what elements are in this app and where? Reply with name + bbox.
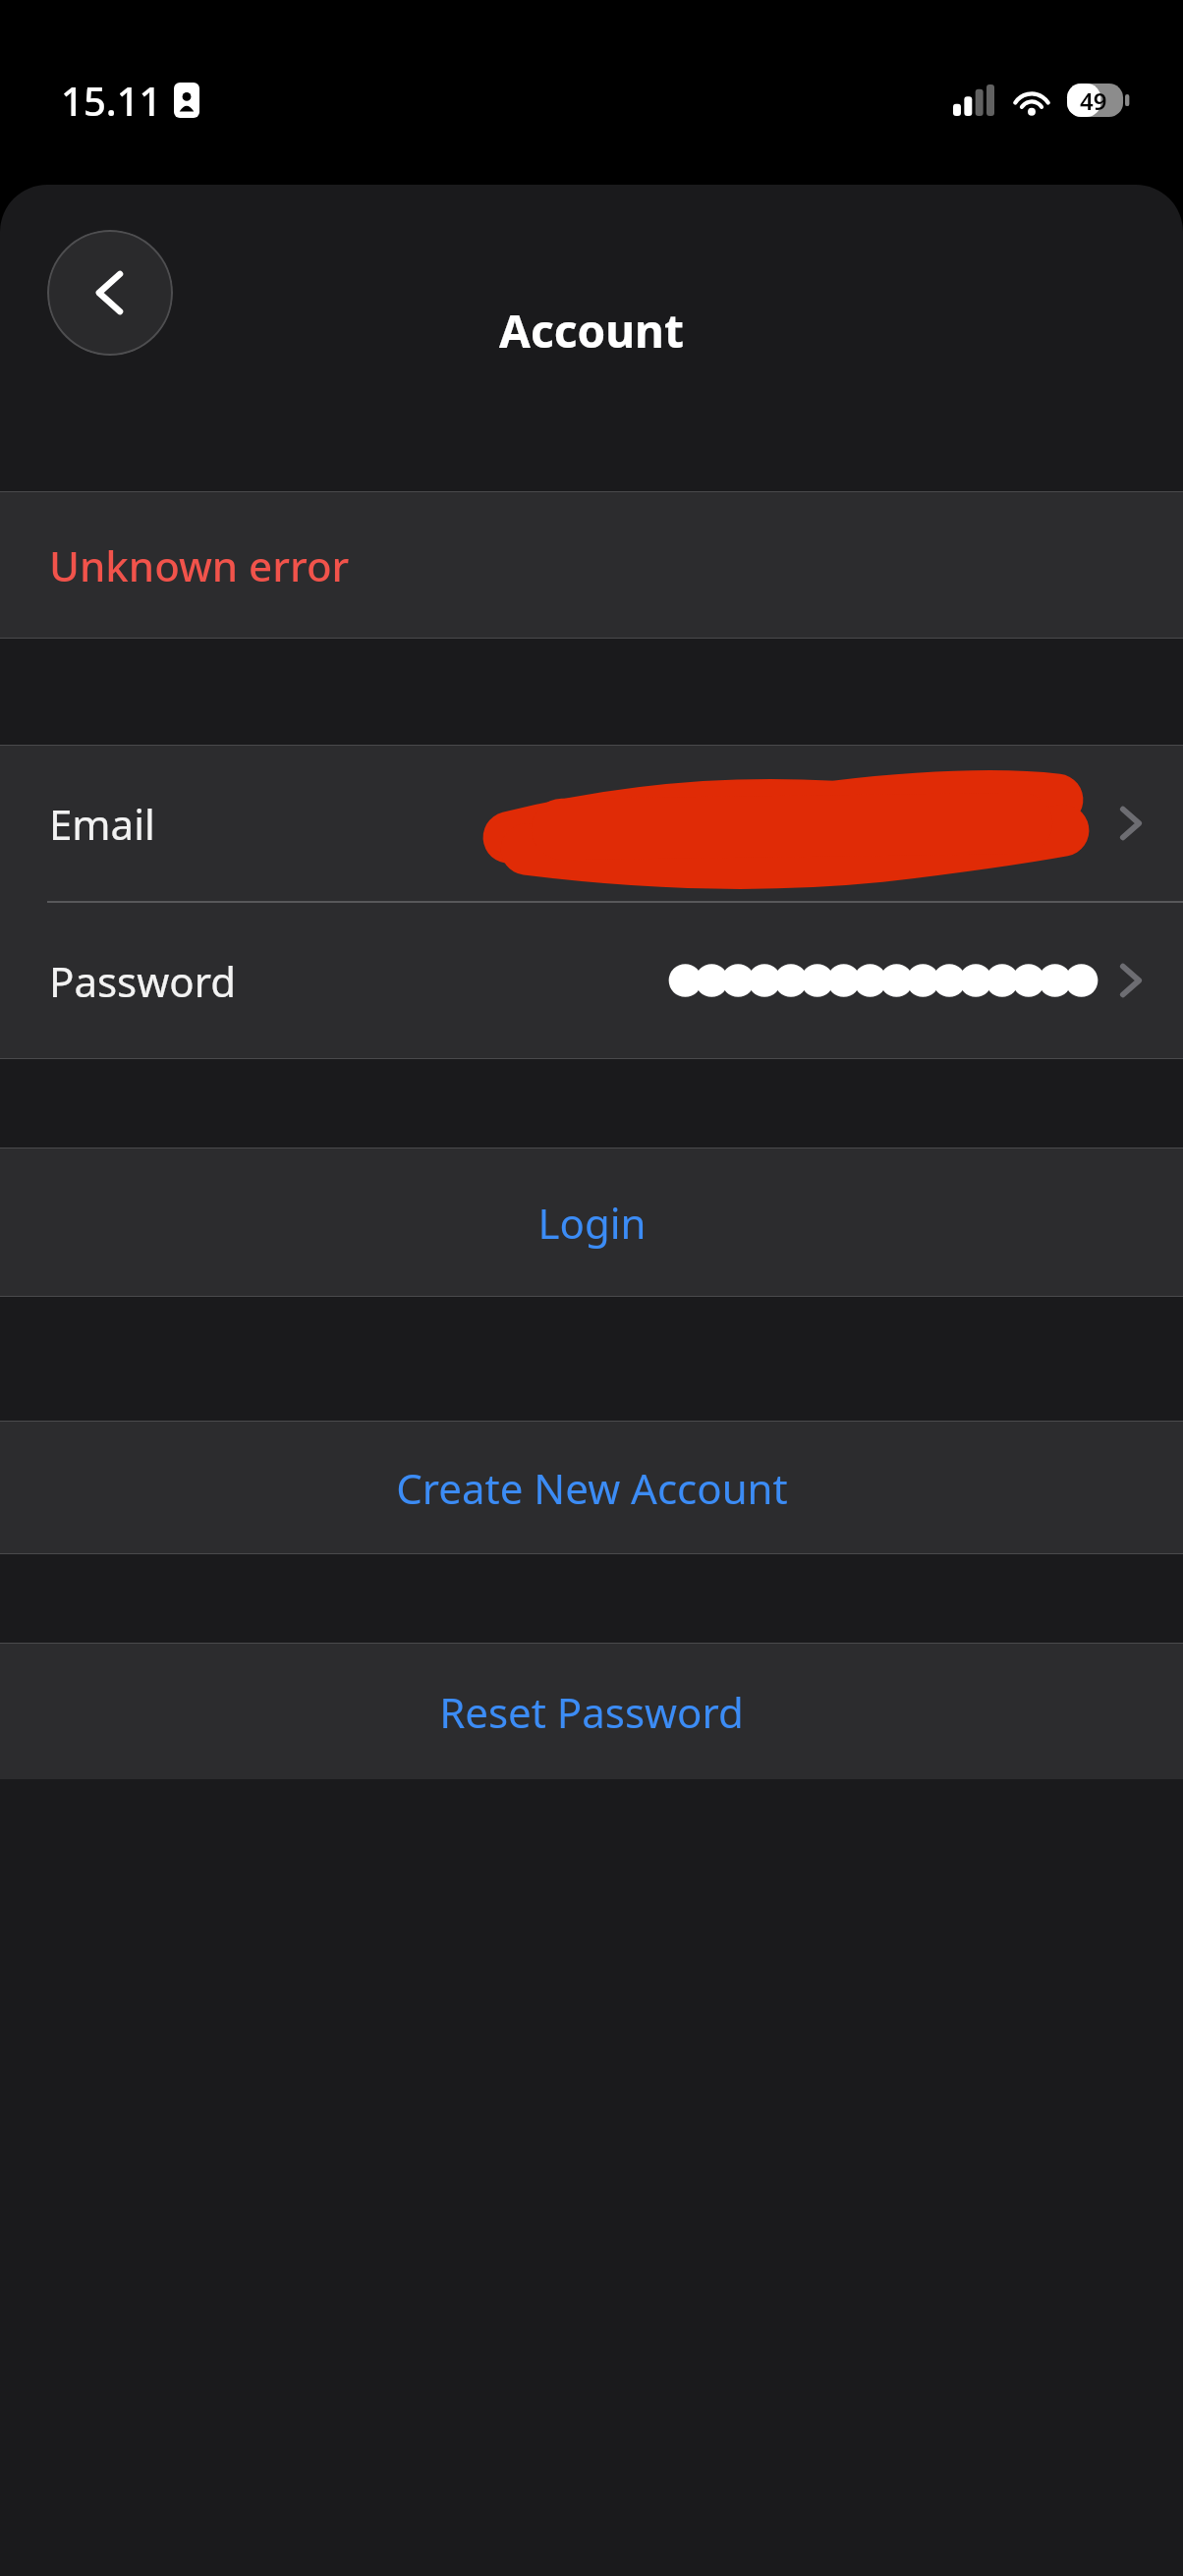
staticText: Password xyxy=(49,953,236,1009)
staticText: Unknown error xyxy=(49,537,350,593)
button[interactable]: Unknown error xyxy=(0,492,1183,638)
staticText: 15.11 xyxy=(61,74,162,127)
staticText: Email xyxy=(49,796,155,852)
button[interactable]: Reset Password xyxy=(0,1644,1183,1779)
button[interactable]: Login xyxy=(0,1148,1183,1296)
button[interactable]: Email xyxy=(0,746,1183,901)
staticText: Login xyxy=(537,1195,647,1251)
button[interactable]: Password xyxy=(0,903,1183,1058)
staticText: Create New Account xyxy=(396,1460,788,1516)
staticText: 49 xyxy=(1080,84,1107,117)
button[interactable]: Back xyxy=(47,230,173,356)
button[interactable]: Create New Account xyxy=(0,1422,1183,1553)
staticText: Reset Password xyxy=(439,1684,744,1740)
staticText: Account xyxy=(499,300,684,362)
